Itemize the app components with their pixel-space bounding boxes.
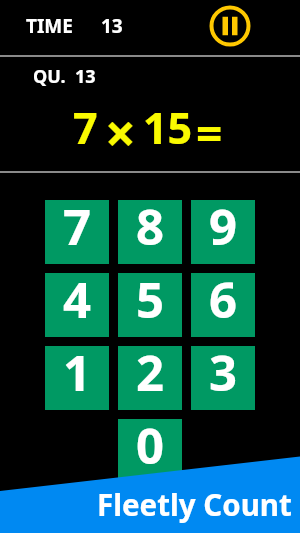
staticText: 0 xyxy=(136,412,165,476)
staticText: × xyxy=(105,95,136,169)
button[interactable]: 2 xyxy=(118,346,182,410)
staticText: Fleetly Count xyxy=(97,484,292,524)
button[interactable]: 9 xyxy=(191,200,255,264)
button[interactable]: 5 xyxy=(118,273,182,337)
staticText: = xyxy=(196,102,223,165)
button[interactable]: 1 xyxy=(45,346,109,410)
staticText: 7 xyxy=(73,98,98,157)
staticText: 6 xyxy=(209,266,238,330)
button[interactable]: 8 xyxy=(118,200,182,264)
staticText: 9 xyxy=(209,193,238,257)
staticText: 15 xyxy=(143,98,193,157)
staticText: QU. xyxy=(33,64,66,89)
button[interactable]: Pause xyxy=(208,4,252,48)
staticText: 5 xyxy=(136,266,165,330)
button[interactable]: 3 xyxy=(191,346,255,410)
staticText: 13 xyxy=(101,13,123,39)
button[interactable]: Fleetly Count xyxy=(97,484,292,524)
button[interactable]: 7 xyxy=(45,200,109,264)
button[interactable]: 4 xyxy=(45,273,109,337)
staticText: 1 xyxy=(63,339,92,403)
button[interactable]: 0 xyxy=(118,419,182,483)
button[interactable]: 6 xyxy=(191,273,255,337)
staticText: 2 xyxy=(136,339,165,403)
staticText: 8 xyxy=(136,193,165,257)
staticText: 3 xyxy=(209,339,238,403)
staticText: TIME xyxy=(26,13,73,39)
staticText: 4 xyxy=(63,266,92,330)
staticText: 13 xyxy=(75,64,96,89)
staticText: 7 xyxy=(63,193,92,257)
